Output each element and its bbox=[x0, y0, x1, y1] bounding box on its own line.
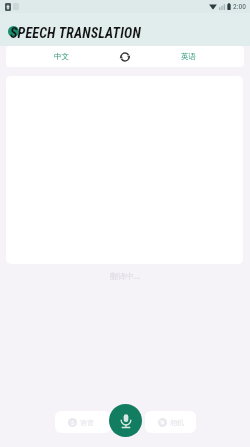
staticText: 英语 bbox=[181, 52, 196, 61]
button[interactable]: Swap languages bbox=[117, 46, 133, 67]
staticText: 2:00 bbox=[233, 2, 246, 11]
button[interactable]: Start voice recording bbox=[109, 404, 142, 437]
staticText: 相机 bbox=[170, 418, 184, 427]
staticText: 语音 bbox=[80, 418, 94, 427]
staticText: 翻译中... bbox=[110, 270, 141, 281]
button[interactable]: Voice input bbox=[55, 411, 111, 433]
staticText: 中文 bbox=[54, 52, 69, 61]
button[interactable]: Camera input bbox=[145, 411, 196, 433]
button[interactable]: 英语 bbox=[133, 46, 244, 67]
staticText: SPEECH TRANSLATION bbox=[10, 25, 141, 41]
button[interactable]: 中文 bbox=[6, 46, 117, 67]
